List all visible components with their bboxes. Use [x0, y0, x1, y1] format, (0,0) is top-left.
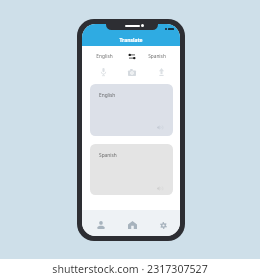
- staticText: shutterstock.com · 2317307527: [52, 262, 208, 276]
- button[interactable]: Settings: [150, 216, 176, 234]
- staticText: Spanish: [148, 53, 166, 60]
- button[interactable]: Voice input: [90, 65, 117, 79]
- staticText: Spanish: [99, 152, 117, 159]
- button[interactable]: Home: [119, 216, 145, 234]
- button[interactable]: Camera input: [119, 65, 145, 79]
- staticText: English: [99, 92, 116, 99]
- button[interactable]: Profile: [88, 216, 114, 234]
- button[interactable]: English: [90, 50, 119, 63]
- button[interactable]: Swap languages: [124, 50, 139, 63]
- button[interactable]: Spanish: [90, 144, 173, 195]
- button[interactable]: Spanish: [142, 50, 171, 63]
- staticText: Translate: [119, 37, 143, 44]
- button[interactable]: Upload: [148, 65, 175, 79]
- staticText: English: [96, 53, 113, 60]
- button[interactable]: English: [90, 84, 173, 136]
